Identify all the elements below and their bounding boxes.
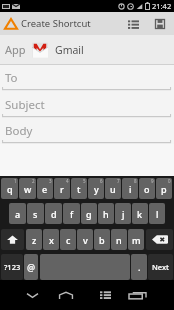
staticText: q xyxy=(7,183,13,195)
staticText: t xyxy=(77,183,81,195)
button[interactable]: Backspace xyxy=(146,229,173,250)
staticText: u xyxy=(110,183,116,195)
button[interactable]: k xyxy=(132,203,148,224)
button[interactable]: p xyxy=(156,178,172,199)
staticText: l xyxy=(156,208,159,220)
staticText: 1 xyxy=(14,178,17,184)
staticText: o xyxy=(144,183,150,195)
button[interactable]: b xyxy=(94,229,110,250)
button[interactable]: To xyxy=(0,65,174,91)
button[interactable]: r xyxy=(54,178,70,199)
button[interactable]: d xyxy=(45,203,62,224)
button[interactable]: Up xyxy=(0,12,21,35)
staticText: To xyxy=(5,70,18,86)
button[interactable]: f xyxy=(63,203,80,224)
staticText: f xyxy=(70,208,74,220)
button[interactable]: . xyxy=(131,254,147,280)
staticText: n xyxy=(116,234,122,246)
staticText: Gmail xyxy=(55,43,84,57)
button[interactable]: w xyxy=(19,178,36,199)
staticText: v xyxy=(83,234,88,246)
button[interactable]: l xyxy=(149,203,165,224)
button[interactable]: Home xyxy=(49,280,83,310)
button[interactable]: o xyxy=(139,178,155,199)
button[interactable]: i xyxy=(122,178,138,199)
staticText: App xyxy=(5,42,26,57)
staticText: s xyxy=(33,208,38,220)
button[interactable]: Next xyxy=(148,254,173,280)
button[interactable]: c xyxy=(60,229,76,250)
button[interactable]: Menu xyxy=(88,280,122,310)
button[interactable]: Recent apps xyxy=(120,280,154,310)
staticText: y xyxy=(94,183,99,195)
staticText: 21:42 xyxy=(152,1,172,11)
staticText: 3 xyxy=(49,178,52,184)
staticText: x xyxy=(49,234,54,246)
staticText: i xyxy=(129,183,132,195)
staticText: ?123 xyxy=(4,262,21,272)
staticText: p xyxy=(161,183,167,195)
button[interactable]: v xyxy=(77,229,93,250)
staticText: c xyxy=(66,234,71,246)
staticText: 6 xyxy=(100,178,103,184)
button[interactable]: App xyxy=(0,35,174,64)
staticText: h xyxy=(103,208,109,220)
button[interactable]: Subject xyxy=(0,91,174,118)
button[interactable]: g xyxy=(81,203,97,224)
button[interactable]: q xyxy=(1,178,18,199)
staticText: m xyxy=(132,234,141,246)
staticText: 5 xyxy=(83,178,86,184)
button[interactable]: a xyxy=(9,203,26,224)
button[interactable]: Hide keyboard xyxy=(15,280,49,310)
button[interactable]: u xyxy=(105,178,121,199)
button[interactable]: s xyxy=(27,203,44,224)
button[interactable]: List xyxy=(122,12,147,35)
button[interactable]: Shift xyxy=(1,229,24,250)
staticText: w xyxy=(24,183,32,195)
staticText: e xyxy=(42,183,48,195)
staticText: Next xyxy=(152,262,169,272)
staticText: r xyxy=(60,183,64,195)
button[interactable]: y xyxy=(88,178,104,199)
button[interactable]: Body xyxy=(0,118,174,144)
button[interactable]: @ xyxy=(24,254,38,280)
staticText: a xyxy=(15,208,21,220)
button[interactable]: Save xyxy=(147,12,174,35)
staticText: Body xyxy=(5,123,33,139)
staticText: 8 xyxy=(134,178,137,184)
staticText: 2 xyxy=(32,178,35,184)
staticText: . xyxy=(138,261,141,273)
button[interactable]: m xyxy=(128,229,144,250)
staticText: 4 xyxy=(66,178,69,184)
button[interactable]: n xyxy=(111,229,127,250)
staticText: d xyxy=(51,208,57,220)
button[interactable]: x xyxy=(43,229,59,250)
staticText: 9 xyxy=(151,178,154,184)
staticText: b xyxy=(99,234,105,246)
staticText: g xyxy=(86,208,92,220)
staticText: 0 xyxy=(168,178,171,184)
button[interactable]: ?123 xyxy=(1,254,23,280)
button[interactable]: j xyxy=(115,203,131,224)
staticText: k xyxy=(137,208,143,220)
staticText: 7 xyxy=(117,178,120,184)
staticText: @ xyxy=(27,261,36,273)
button[interactable]: t xyxy=(71,178,87,199)
staticText: z xyxy=(32,234,37,246)
button[interactable]: z xyxy=(26,229,42,250)
staticText: j xyxy=(122,208,125,220)
button[interactable]: h xyxy=(98,203,114,224)
button[interactable]: e xyxy=(37,178,53,199)
staticText: Create Shortcut xyxy=(21,17,91,30)
staticText: Subject xyxy=(5,97,45,113)
